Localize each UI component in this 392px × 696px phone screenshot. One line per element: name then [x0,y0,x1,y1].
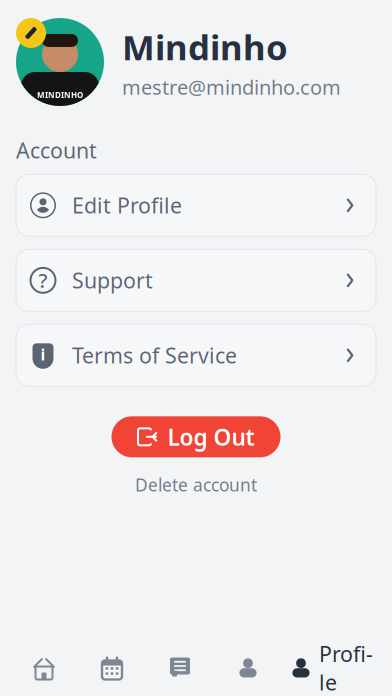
staticText: Terms of Service [72,341,237,369]
button[interactable]: Profile [282,645,381,691]
staticText: Support [72,266,153,294]
button[interactable]: Messages [146,645,214,691]
button[interactable]: Delete account [121,467,271,502]
staticText: Edit Profile [72,191,182,219]
button[interactable]: Log Out [111,416,280,457]
button[interactable]: ? [0,249,392,311]
staticText: ? [38,267,47,294]
staticText: Account [16,136,97,164]
button[interactable]: Calendar [78,645,146,691]
staticText: MINDINHO [37,90,83,100]
staticText: Delete account [135,473,257,496]
button[interactable]: Edit profile photo [16,18,46,48]
button[interactable]: Home [10,645,78,691]
staticText: mestre@mindinho.com [122,74,341,100]
staticText: Log Out [167,422,254,452]
staticText: Mindinho [122,24,288,70]
button[interactable]: Edit Profile [0,174,392,236]
staticText: Profile [319,640,373,696]
staticText: i [40,344,45,365]
button[interactable]: i [0,324,392,386]
button[interactable]: Contacts [214,645,282,691]
